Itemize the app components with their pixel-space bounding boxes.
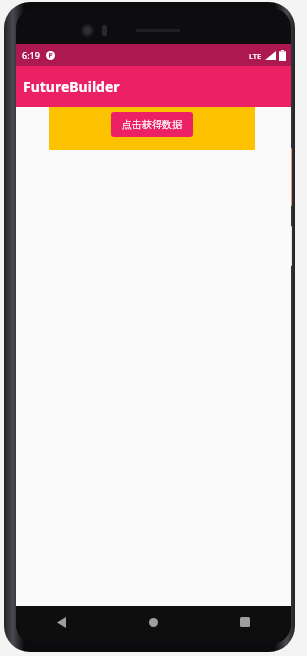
button[interactable]: 点击获得数据 — [111, 112, 193, 137]
button[interactable]: Home — [107, 606, 199, 638]
staticText: LTE — [249, 51, 262, 61]
staticText: 点击获得数据 — [122, 118, 182, 131]
button[interactable]: Recent apps — [199, 606, 291, 638]
staticText: FutureBuilder — [23, 77, 120, 96]
button[interactable]: Back — [16, 606, 107, 638]
staticText: 6:19 — [22, 49, 40, 61]
